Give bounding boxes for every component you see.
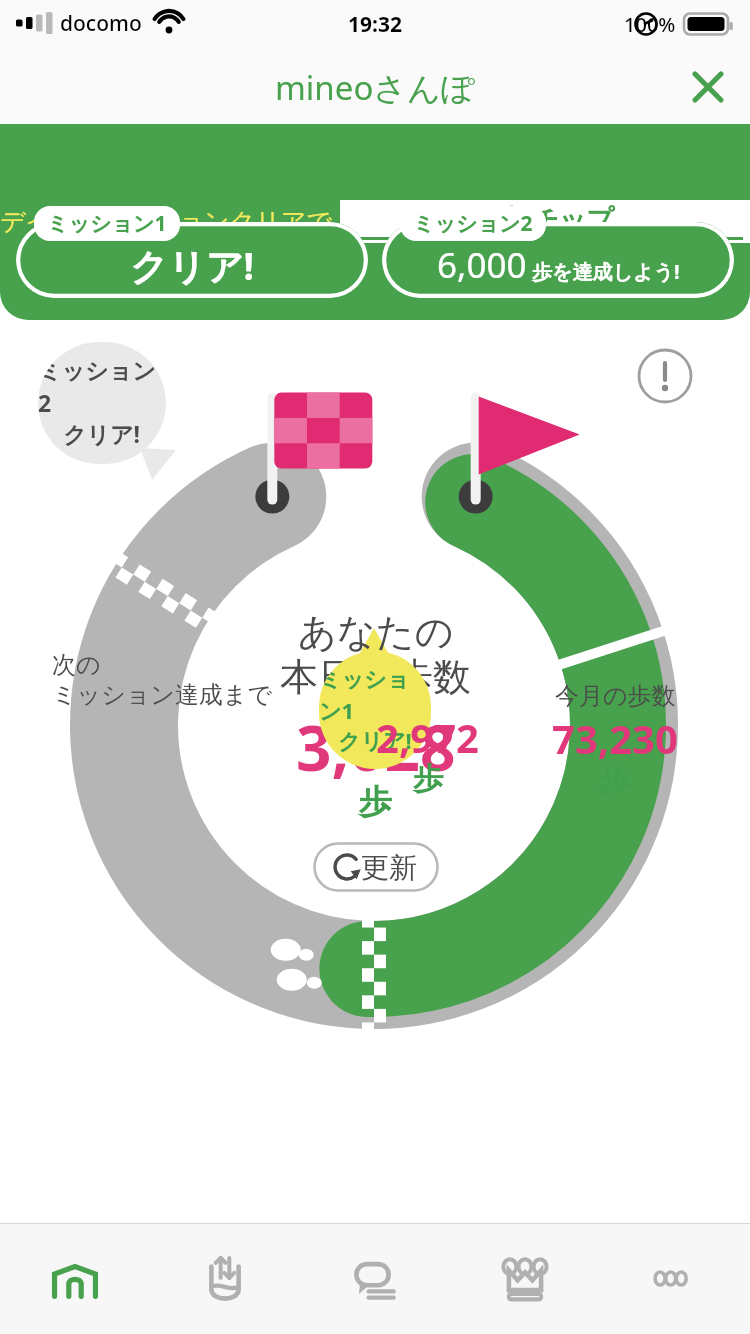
- staticText: 6,000: [437, 241, 527, 289]
- staticText: 今月の歩数: [555, 681, 676, 711]
- staticText: 歩: [600, 761, 630, 799]
- button[interactable]: Close: [680, 59, 736, 115]
- staticText: docomo: [60, 9, 142, 38]
- staticText: デイリーミッションクリアで: [0, 206, 333, 237]
- button[interactable]: 更新: [311, 842, 441, 892]
- button[interactable]: 6,000: [382, 206, 734, 298]
- button[interactable]: クリア!: [16, 206, 368, 298]
- staticText: ミッション2: [38, 357, 166, 418]
- staticText: クリア!: [338, 725, 412, 755]
- staticText: 100%: [624, 11, 676, 38]
- staticText: 3,028: [296, 705, 456, 789]
- staticText: クリア!: [63, 418, 141, 449]
- staticText: 歩: [359, 781, 392, 823]
- staticText: 19:32: [348, 10, 402, 39]
- staticText: 本日の歩数: [280, 653, 471, 701]
- staticText: クリア!: [130, 240, 255, 291]
- staticText: あなたの: [298, 608, 454, 656]
- button[interactable]: デイリーミッションクリアで: [0, 124, 750, 320]
- staticText: 73,230: [552, 711, 678, 765]
- button[interactable]: More: [600, 1224, 750, 1334]
- button[interactable]: Information: [637, 348, 693, 404]
- staticText: ミッション1: [319, 666, 431, 725]
- staticText: ミッション達成まで: [52, 680, 272, 710]
- staticText: ミッション1: [47, 209, 167, 238]
- button[interactable]: Rank: [450, 1224, 600, 1334]
- button[interactable]: Chat: [300, 1224, 450, 1334]
- staticText: 歩: [413, 760, 443, 798]
- staticText: 無料チップ: [477, 203, 614, 237]
- staticText: 2,972: [376, 710, 479, 764]
- staticText: 歩を達成しよう!: [532, 258, 680, 285]
- staticText: 次の: [52, 650, 101, 680]
- staticText: 更新: [361, 850, 417, 885]
- button[interactable]: Data: [150, 1224, 300, 1334]
- staticText: ミッション2: [413, 209, 533, 238]
- button[interactable]: Home: [0, 1224, 150, 1334]
- staticText: mineoさんぽ: [275, 65, 475, 110]
